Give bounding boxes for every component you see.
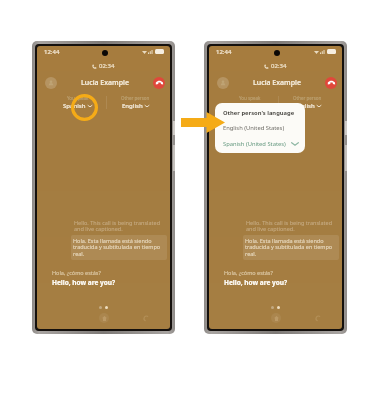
staticText: English — [294, 102, 315, 110]
button[interactable]: Contact photo — [45, 77, 57, 89]
button[interactable]: Other person's language — [215, 103, 305, 153]
staticText: Hola. Esta llamada está siendo traducida… — [245, 237, 337, 258]
staticText: Hola, ¿cómo estás? — [224, 269, 273, 276]
staticText: Hola. Esta llamada está siendo traducida… — [73, 237, 165, 258]
staticText: Hello, how are you? — [52, 278, 116, 287]
button[interactable]: You speak — [221, 94, 278, 111]
button[interactable]: Back — [143, 315, 150, 322]
button[interactable]: Home — [99, 313, 109, 323]
staticText: Hello, how are you? — [224, 278, 288, 287]
staticText: 02:34 — [271, 62, 287, 70]
button[interactable]: Home — [271, 313, 281, 323]
button[interactable]: End call — [325, 77, 337, 89]
staticText: 02:34 — [99, 62, 115, 70]
staticText: Other person — [121, 95, 150, 101]
staticText: Spanish — [63, 102, 86, 110]
staticText: Other person — [293, 95, 322, 101]
staticText: You speak — [67, 95, 89, 101]
button[interactable]: You speak — [49, 94, 106, 111]
staticText: You speak — [239, 95, 261, 101]
button[interactable]: Other person — [107, 94, 164, 111]
staticText: English — [122, 102, 143, 110]
button[interactable]: End call — [153, 77, 165, 89]
staticText: Other person's language — [223, 109, 295, 117]
staticText: Spanish — [235, 102, 258, 110]
staticText: 12:44 — [44, 48, 60, 56]
staticText: Lucia Example — [229, 78, 325, 88]
button[interactable]: Other person — [279, 94, 336, 111]
staticText: Hello. This call is being translated and… — [74, 219, 166, 233]
button[interactable]: Contact photo — [217, 77, 229, 89]
staticText: Hola, ¿cómo estás? — [52, 269, 101, 276]
staticText: Lucia Example — [57, 78, 153, 88]
staticText: 12:44 — [216, 48, 232, 56]
staticText: English (United States) — [223, 124, 285, 132]
staticText: Spanish (United States) — [223, 140, 286, 148]
staticText: Hello. This call is being translated and… — [246, 219, 338, 233]
button[interactable]: Back — [315, 315, 322, 322]
